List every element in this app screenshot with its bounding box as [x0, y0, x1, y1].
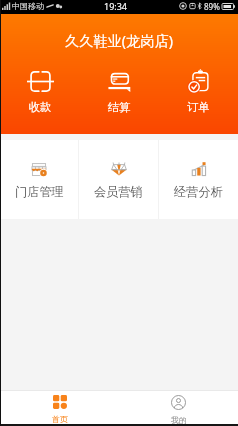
staticText: 久久鞋业(龙岗店) — [0, 31, 238, 50]
button[interactable]: 门店管理 — [0, 140, 78, 219]
staticText: 中国移动 — [12, 1, 44, 11]
button[interactable]: 我的 — [119, 391, 238, 424]
staticText: 会员营销 — [94, 184, 143, 199]
staticText: 首页 — [52, 414, 68, 424]
staticText: 结算 — [108, 100, 131, 114]
button[interactable]: 收款 Receive payment — [0, 71, 80, 114]
staticText: 订单 — [187, 100, 210, 114]
staticText: 89% — [204, 1, 220, 12]
staticText: 我的 — [171, 415, 187, 424]
button[interactable]: 首页 — [0, 391, 119, 424]
button[interactable]: 订单 Orders — [159, 71, 238, 114]
staticText: 门店管理 — [15, 184, 64, 199]
button[interactable]: 经营分析 — [159, 140, 238, 219]
staticText: 收款 — [29, 100, 52, 114]
staticText: 19:34 — [104, 0, 128, 12]
button[interactable]: 结算 Settle — [80, 71, 159, 114]
staticText: 经营分析 — [174, 184, 223, 199]
button[interactable]: 会员营销 — [79, 140, 158, 219]
